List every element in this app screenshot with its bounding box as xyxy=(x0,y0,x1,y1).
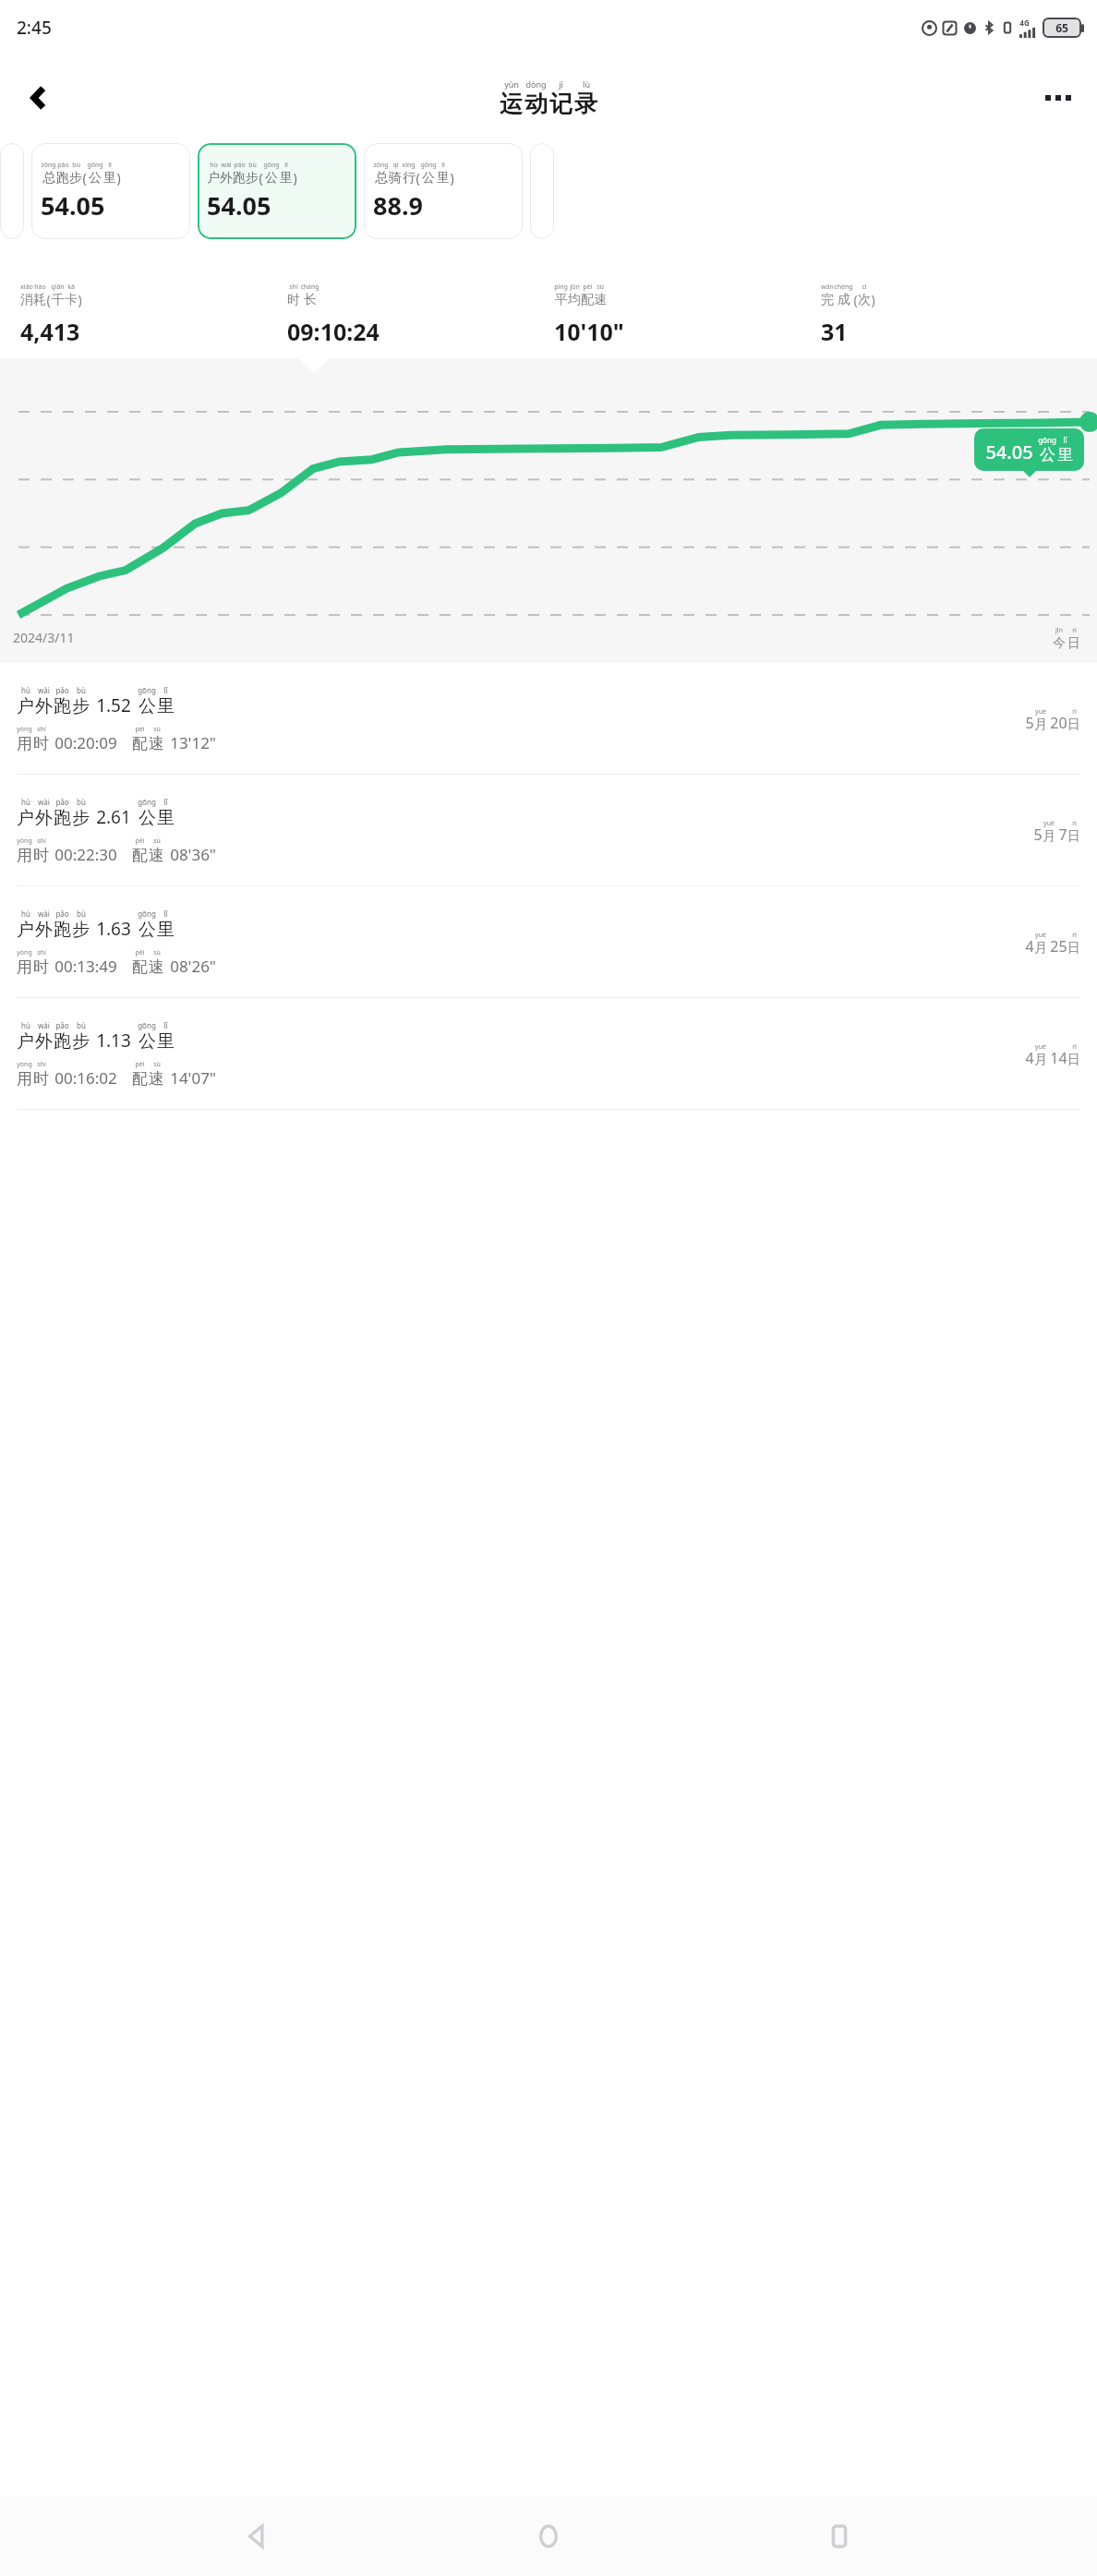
staticText: jūn xyxy=(570,283,580,292)
staticText: 用 xyxy=(17,846,32,865)
staticText: pǎo xyxy=(234,161,246,170)
staticText: 09:10:24 xyxy=(287,316,380,347)
staticText: 跑 xyxy=(54,807,71,829)
staticText: lǐ xyxy=(163,685,168,695)
staticText: 跑 xyxy=(54,1030,71,1053)
staticText: 总 xyxy=(375,170,388,187)
staticText: bù xyxy=(77,1020,86,1030)
staticText: 配 xyxy=(132,846,148,865)
staticText: rì xyxy=(1072,819,1077,828)
staticText: 平 xyxy=(555,292,568,308)
staticText: gōng xyxy=(420,161,437,170)
staticText: 日 xyxy=(1067,940,1080,957)
staticText: 00:20:09 xyxy=(54,732,117,753)
staticText: 跑 xyxy=(56,170,69,187)
staticText: 用 xyxy=(17,957,32,977)
button[interactable]: hù xyxy=(0,663,1097,774)
staticText: 54.05 xyxy=(985,439,1033,464)
staticText: 00:16:02 xyxy=(54,1067,117,1089)
staticText: 31 xyxy=(821,316,848,347)
button[interactable]: Home xyxy=(515,2503,582,2570)
staticText: 里 xyxy=(157,919,175,941)
staticText: hù xyxy=(21,1020,30,1030)
staticText: píng xyxy=(554,283,568,292)
button[interactable]: hù xyxy=(0,886,1097,997)
button[interactable]: Back xyxy=(224,2503,291,2570)
button[interactable]: Previous metric xyxy=(0,143,24,239)
staticText: 外 xyxy=(35,807,53,829)
staticText: 时 xyxy=(33,1069,49,1089)
button[interactable]: Next metric xyxy=(530,143,554,239)
staticText: rì xyxy=(1072,931,1077,940)
staticText: 时 xyxy=(33,846,49,865)
staticText: shí xyxy=(289,283,298,292)
staticText: rì xyxy=(1072,626,1077,635)
staticText: ) xyxy=(293,169,297,187)
staticText: lǐ xyxy=(108,161,112,170)
staticText: yuè xyxy=(1035,931,1046,940)
staticText: 配 xyxy=(581,292,594,308)
staticText: 记 xyxy=(549,90,573,118)
staticText: lǐ xyxy=(163,909,168,919)
staticText: 10'10" xyxy=(554,316,624,347)
staticText: pèi xyxy=(135,837,145,846)
staticText: 跑 xyxy=(54,695,71,717)
button[interactable]: zǒng xyxy=(364,143,523,239)
staticText: 消 xyxy=(20,292,33,308)
staticText: sù xyxy=(153,948,161,957)
staticText: 2:45 xyxy=(17,16,52,40)
button[interactable]: zǒng xyxy=(31,143,190,239)
button[interactable]: More options xyxy=(1032,72,1084,124)
staticText: 外 xyxy=(35,1030,53,1053)
staticText: 里 xyxy=(1057,445,1073,464)
staticText: ) xyxy=(871,291,875,308)
staticText: 公 xyxy=(139,695,156,717)
staticText: 7 xyxy=(1058,825,1067,845)
staticText: 里 xyxy=(157,807,175,829)
staticText: 长 xyxy=(304,292,317,308)
staticText: 08'36" xyxy=(170,844,216,865)
staticText: 里 xyxy=(280,170,293,187)
staticText: shí xyxy=(37,1060,46,1069)
staticText: 里 xyxy=(157,695,175,717)
staticText: gōng xyxy=(263,161,280,170)
staticText: bù xyxy=(77,909,86,919)
staticText: 时 xyxy=(33,734,49,753)
staticText: 54.05 xyxy=(41,188,181,223)
staticText: ( xyxy=(853,291,858,308)
staticText: 卡 xyxy=(65,292,78,308)
staticText: yuè xyxy=(1035,1042,1046,1052)
staticText: 时 xyxy=(287,292,300,308)
staticText: 外 xyxy=(35,919,53,941)
staticText: jīn xyxy=(1055,626,1063,635)
button[interactable]: Back xyxy=(13,72,65,124)
button[interactable]: hù xyxy=(0,998,1097,1109)
staticText: 速 xyxy=(594,292,607,308)
staticText: 5 xyxy=(1025,713,1034,733)
staticText: ( xyxy=(82,169,87,187)
staticText: 1.13 xyxy=(96,1029,131,1053)
staticText: gōng xyxy=(138,1020,156,1030)
button[interactable]: Recent apps xyxy=(806,2503,873,2570)
staticText: zǒng xyxy=(41,161,56,170)
staticText: dòng xyxy=(525,78,547,90)
staticText: jì xyxy=(559,78,563,90)
staticText: 4,413 xyxy=(20,316,80,347)
staticText: gōng xyxy=(138,909,156,919)
staticText: 速 xyxy=(149,734,164,753)
staticText: wài xyxy=(38,1020,50,1030)
staticText: 月 xyxy=(1043,828,1055,845)
staticText: 户 xyxy=(17,807,34,829)
button[interactable]: hù xyxy=(0,775,1097,885)
staticText: 完 xyxy=(821,292,834,308)
staticText: sù xyxy=(597,283,604,292)
staticText: 骑 xyxy=(389,170,402,187)
staticText: 08'26" xyxy=(170,956,216,977)
staticText: sù xyxy=(153,837,161,846)
staticText: sù xyxy=(153,725,161,734)
staticText: 日 xyxy=(1067,1052,1080,1068)
staticText: 13'12" xyxy=(170,732,216,753)
button[interactable]: hù xyxy=(198,143,356,239)
staticText: 日 xyxy=(1067,635,1080,652)
staticText: 步 xyxy=(72,695,90,717)
